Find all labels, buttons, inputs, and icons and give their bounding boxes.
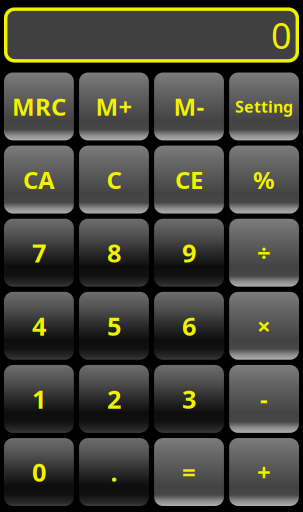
button[interactable]: CA <box>4 146 74 213</box>
button[interactable]: × <box>229 292 299 360</box>
staticText: 0 <box>32 455 46 489</box>
staticText: CA <box>23 164 55 195</box>
button[interactable]: % <box>229 146 299 213</box>
staticText: 8 <box>107 236 121 269</box>
staticText: + <box>257 456 271 488</box>
staticText: 3 <box>182 382 196 416</box>
button[interactable]: Setting <box>229 72 299 140</box>
button[interactable]: 4 <box>4 292 74 360</box>
staticText: 2 <box>107 382 121 416</box>
button[interactable]: 7 <box>4 219 74 287</box>
button[interactable]: . <box>79 438 149 506</box>
staticText: % <box>253 164 275 195</box>
staticText: 7 <box>32 236 46 269</box>
button[interactable]: 2 <box>79 365 149 433</box>
staticText: 0 <box>271 11 292 59</box>
staticText: . <box>110 455 117 489</box>
button[interactable]: ÷ <box>229 219 299 287</box>
button[interactable]: 9 <box>154 219 224 287</box>
button[interactable]: M+ <box>79 72 149 140</box>
button[interactable]: + <box>229 438 299 506</box>
button[interactable]: M- <box>154 72 224 140</box>
button[interactable]: 5 <box>79 292 149 360</box>
staticText: 6 <box>182 309 196 343</box>
button[interactable]: 3 <box>154 365 224 433</box>
button[interactable]: 1 <box>4 365 74 433</box>
staticText: 4 <box>32 309 46 343</box>
staticText: - <box>260 383 268 415</box>
button[interactable]: - <box>229 365 299 433</box>
button[interactable]: CE <box>154 146 224 213</box>
staticText: 9 <box>182 236 196 269</box>
staticText: 5 <box>107 309 121 343</box>
staticText: M- <box>173 90 204 122</box>
button[interactable]: = <box>154 438 224 506</box>
staticText: Setting <box>235 96 293 117</box>
staticText: × <box>257 310 271 342</box>
staticText: 1 <box>32 382 46 416</box>
staticText: MRC <box>12 90 66 122</box>
staticText: C <box>106 164 121 195</box>
staticText: ÷ <box>257 237 271 269</box>
button[interactable]: 0 <box>4 438 74 506</box>
staticText: CE <box>175 164 203 195</box>
button[interactable]: 6 <box>154 292 224 360</box>
button[interactable]: MRC <box>4 72 74 140</box>
button[interactable]: C <box>79 146 149 213</box>
button[interactable]: 8 <box>79 219 149 287</box>
staticText: = <box>182 456 196 488</box>
staticText: M+ <box>95 90 132 122</box>
